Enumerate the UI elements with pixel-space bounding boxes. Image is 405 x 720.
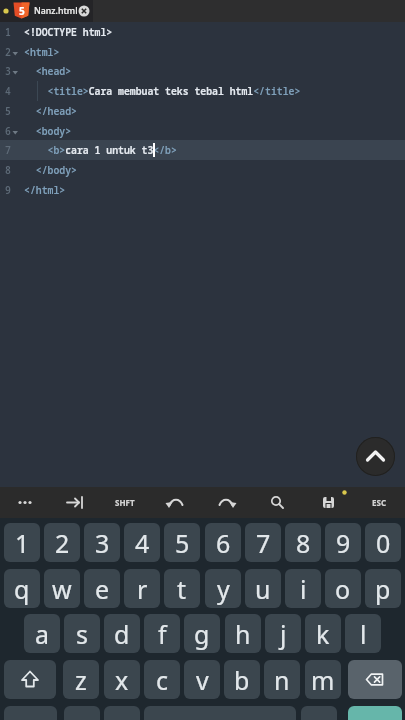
- staticText: z: [75, 663, 87, 697]
- staticText: 5: [5, 105, 11, 118]
- staticText: 5: [175, 526, 190, 560]
- button[interactable]: q: [4, 569, 40, 608]
- staticText: <b>cara 1 untuk t3</b>: [24, 144, 177, 157]
- staticText: p: [375, 572, 391, 606]
- staticText: ESC: [372, 497, 387, 508]
- button[interactable]: 1: [4, 523, 40, 562]
- staticText: <body>: [24, 125, 72, 138]
- button[interactable]: 9: [325, 523, 361, 562]
- button[interactable]: 8: [285, 523, 321, 562]
- staticText: 9: [336, 526, 351, 560]
- staticText: <title>Cara membuat teks tebal html</tit…: [24, 85, 301, 98]
- button[interactable]: t: [164, 569, 200, 608]
- button[interactable]: 5: [164, 523, 200, 562]
- button[interactable]: 0: [365, 523, 401, 562]
- staticText: e: [95, 572, 110, 606]
- staticText: <head>: [24, 65, 72, 78]
- button[interactable]: l: [345, 614, 381, 653]
- staticText: </head>: [24, 105, 77, 118]
- button[interactable]: [348, 706, 402, 720]
- staticText: d: [114, 617, 130, 651]
- button[interactable]: 3: [84, 523, 120, 562]
- staticText: k: [316, 617, 330, 651]
- staticText: 3: [5, 65, 11, 78]
- button[interactable]: [4, 660, 56, 699]
- button[interactable]: [0, 487, 50, 518]
- staticText: t: [177, 572, 187, 606]
- staticText: b: [234, 663, 250, 697]
- staticText: m: [311, 663, 335, 697]
- button[interactable]: 7: [245, 523, 281, 562]
- button[interactable]: z: [63, 660, 99, 699]
- button[interactable]: y: [205, 569, 241, 608]
- staticText: 7: [256, 526, 271, 560]
- button[interactable]: [252, 487, 303, 518]
- staticText: 0: [376, 526, 391, 560]
- button[interactable]: SHFT: [100, 487, 150, 518]
- staticText: l: [360, 617, 367, 651]
- button[interactable]: r: [124, 569, 160, 608]
- staticText: x: [115, 663, 129, 697]
- staticText: <html>: [24, 46, 60, 59]
- button[interactable]: i: [285, 569, 321, 608]
- button[interactable]: c: [144, 660, 180, 699]
- button[interactable]: m: [305, 660, 341, 699]
- button[interactable]: [50, 487, 100, 518]
- staticText: Nanz.html: [34, 5, 78, 17]
- staticText: <!DOCTYPE html>: [24, 26, 113, 39]
- button[interactable]: [4, 706, 57, 720]
- button[interactable]: v: [184, 660, 220, 699]
- button[interactable]: [201, 487, 252, 518]
- button[interactable]: [356, 437, 395, 476]
- staticText: u: [255, 572, 271, 606]
- staticText: 1: [15, 526, 30, 560]
- staticText: 2: [5, 46, 11, 59]
- button[interactable]: e: [84, 569, 120, 608]
- button[interactable]: [104, 706, 140, 720]
- staticText: a: [35, 617, 50, 651]
- button[interactable]: p: [365, 569, 401, 608]
- button[interactable]: ESC: [354, 487, 405, 518]
- button[interactable]: 5: [0, 0, 93, 22]
- staticText: s: [76, 617, 88, 651]
- button[interactable]: a: [24, 614, 60, 653]
- button[interactable]: [64, 706, 100, 720]
- staticText: </html>: [24, 184, 66, 197]
- button[interactable]: n: [264, 660, 300, 699]
- button[interactable]: w: [44, 569, 80, 608]
- button[interactable]: h: [225, 614, 261, 653]
- staticText: j: [280, 617, 287, 651]
- staticText: v: [196, 663, 209, 697]
- staticText: 2: [55, 526, 70, 560]
- button[interactable]: 2: [44, 523, 80, 562]
- button[interactable]: x: [104, 660, 140, 699]
- staticText: 4: [135, 526, 150, 560]
- button[interactable]: s: [64, 614, 100, 653]
- button[interactable]: u: [245, 569, 281, 608]
- staticText: </body>: [24, 164, 77, 177]
- button[interactable]: g: [184, 614, 220, 653]
- staticText: w: [52, 572, 72, 606]
- button[interactable]: [78, 5, 90, 17]
- button[interactable]: d: [104, 614, 140, 653]
- staticText: 5: [19, 4, 25, 18]
- button[interactable]: k: [305, 614, 341, 653]
- button[interactable]: 6: [205, 523, 241, 562]
- button[interactable]: b: [224, 660, 260, 699]
- button[interactable]: 4: [124, 523, 160, 562]
- button[interactable]: f: [144, 614, 180, 653]
- button[interactable]: [150, 487, 201, 518]
- button[interactable]: o: [325, 569, 361, 608]
- staticText: o: [335, 572, 351, 606]
- button[interactable]: j: [265, 614, 301, 653]
- staticText: n: [274, 663, 290, 697]
- staticText: SHFT: [115, 497, 135, 508]
- staticText: 9: [5, 184, 11, 197]
- staticText: 6: [5, 125, 11, 138]
- staticText: 4: [5, 85, 11, 98]
- button[interactable]: [301, 706, 337, 720]
- button[interactable]: [348, 660, 402, 699]
- staticText: 7: [5, 144, 11, 157]
- button[interactable]: [303, 487, 354, 518]
